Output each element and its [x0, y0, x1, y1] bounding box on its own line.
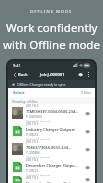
- button[interactable]: JOB FILE: [8, 104, 95, 122]
- staticText: Updated 2 min ago: [26, 120, 51, 122]
- button[interactable]: Download for offline: [84, 128, 91, 135]
- button[interactable]: JOB FILE: [8, 122, 95, 140]
- button[interactable]: Back: [12, 71, 29, 79]
- staticText: OFFLINE MODE: [30, 9, 73, 15]
- staticText: 70863/73034-0033-234...: [26, 145, 72, 150]
- button[interactable]: Offline download: [77, 71, 84, 78]
- staticText: P-00023: [26, 133, 39, 137]
- staticText: P-00023: [26, 169, 39, 173]
- staticText: P-200886: [26, 151, 40, 155]
- button[interactable]: Select: [12, 89, 26, 96]
- staticText: Work confidently: [6, 20, 98, 36]
- staticText: TIMESHEET-0034-0600-234...: [26, 109, 79, 114]
- button[interactable]: Download for offline: [84, 110, 91, 117]
- staticText: Updated 2 min ago: [26, 174, 51, 176]
- staticText: P-0000000: [26, 115, 42, 119]
- button[interactable]: Download for offline: [84, 146, 91, 153]
- staticText: JOB FILE: [26, 122, 39, 126]
- staticText: Select: [13, 90, 25, 95]
- button[interactable]: JOB FILE: [8, 176, 95, 183]
- staticText: with Offline mode: [3, 37, 100, 53]
- staticText: Back: [18, 72, 28, 78]
- staticText: Job J-000001: [40, 72, 65, 78]
- staticText: Updated 2 min ago: [26, 138, 51, 140]
- staticText: December Charger Outpo...: [26, 163, 78, 168]
- staticText: Industry Charger Outpost: [26, 127, 75, 132]
- staticText: JOB FILE: [26, 104, 39, 108]
- button[interactable]: More options: [86, 71, 91, 78]
- staticText: 9:41: [13, 63, 21, 68]
- staticText: JOB FILE: [26, 176, 39, 180]
- staticText: Offline: Changes ready to sync: [17, 82, 66, 87]
- staticText: JOB FILE: [26, 140, 39, 144]
- button[interactable]: Download for offline: [84, 164, 91, 171]
- button[interactable]: JOB FILE: [8, 158, 95, 176]
- staticText: Showing: all files: [12, 99, 38, 103]
- staticText: JOB FILE: [26, 158, 39, 162]
- button[interactable]: Download for offline: [84, 176, 91, 183]
- staticText: November Charger Outpo...: [26, 181, 79, 183]
- staticText: 6 files: [81, 90, 91, 95]
- staticText: Updated 2 min ago: [26, 156, 51, 158]
- button[interactable]: JOB FILE: [8, 140, 95, 158]
